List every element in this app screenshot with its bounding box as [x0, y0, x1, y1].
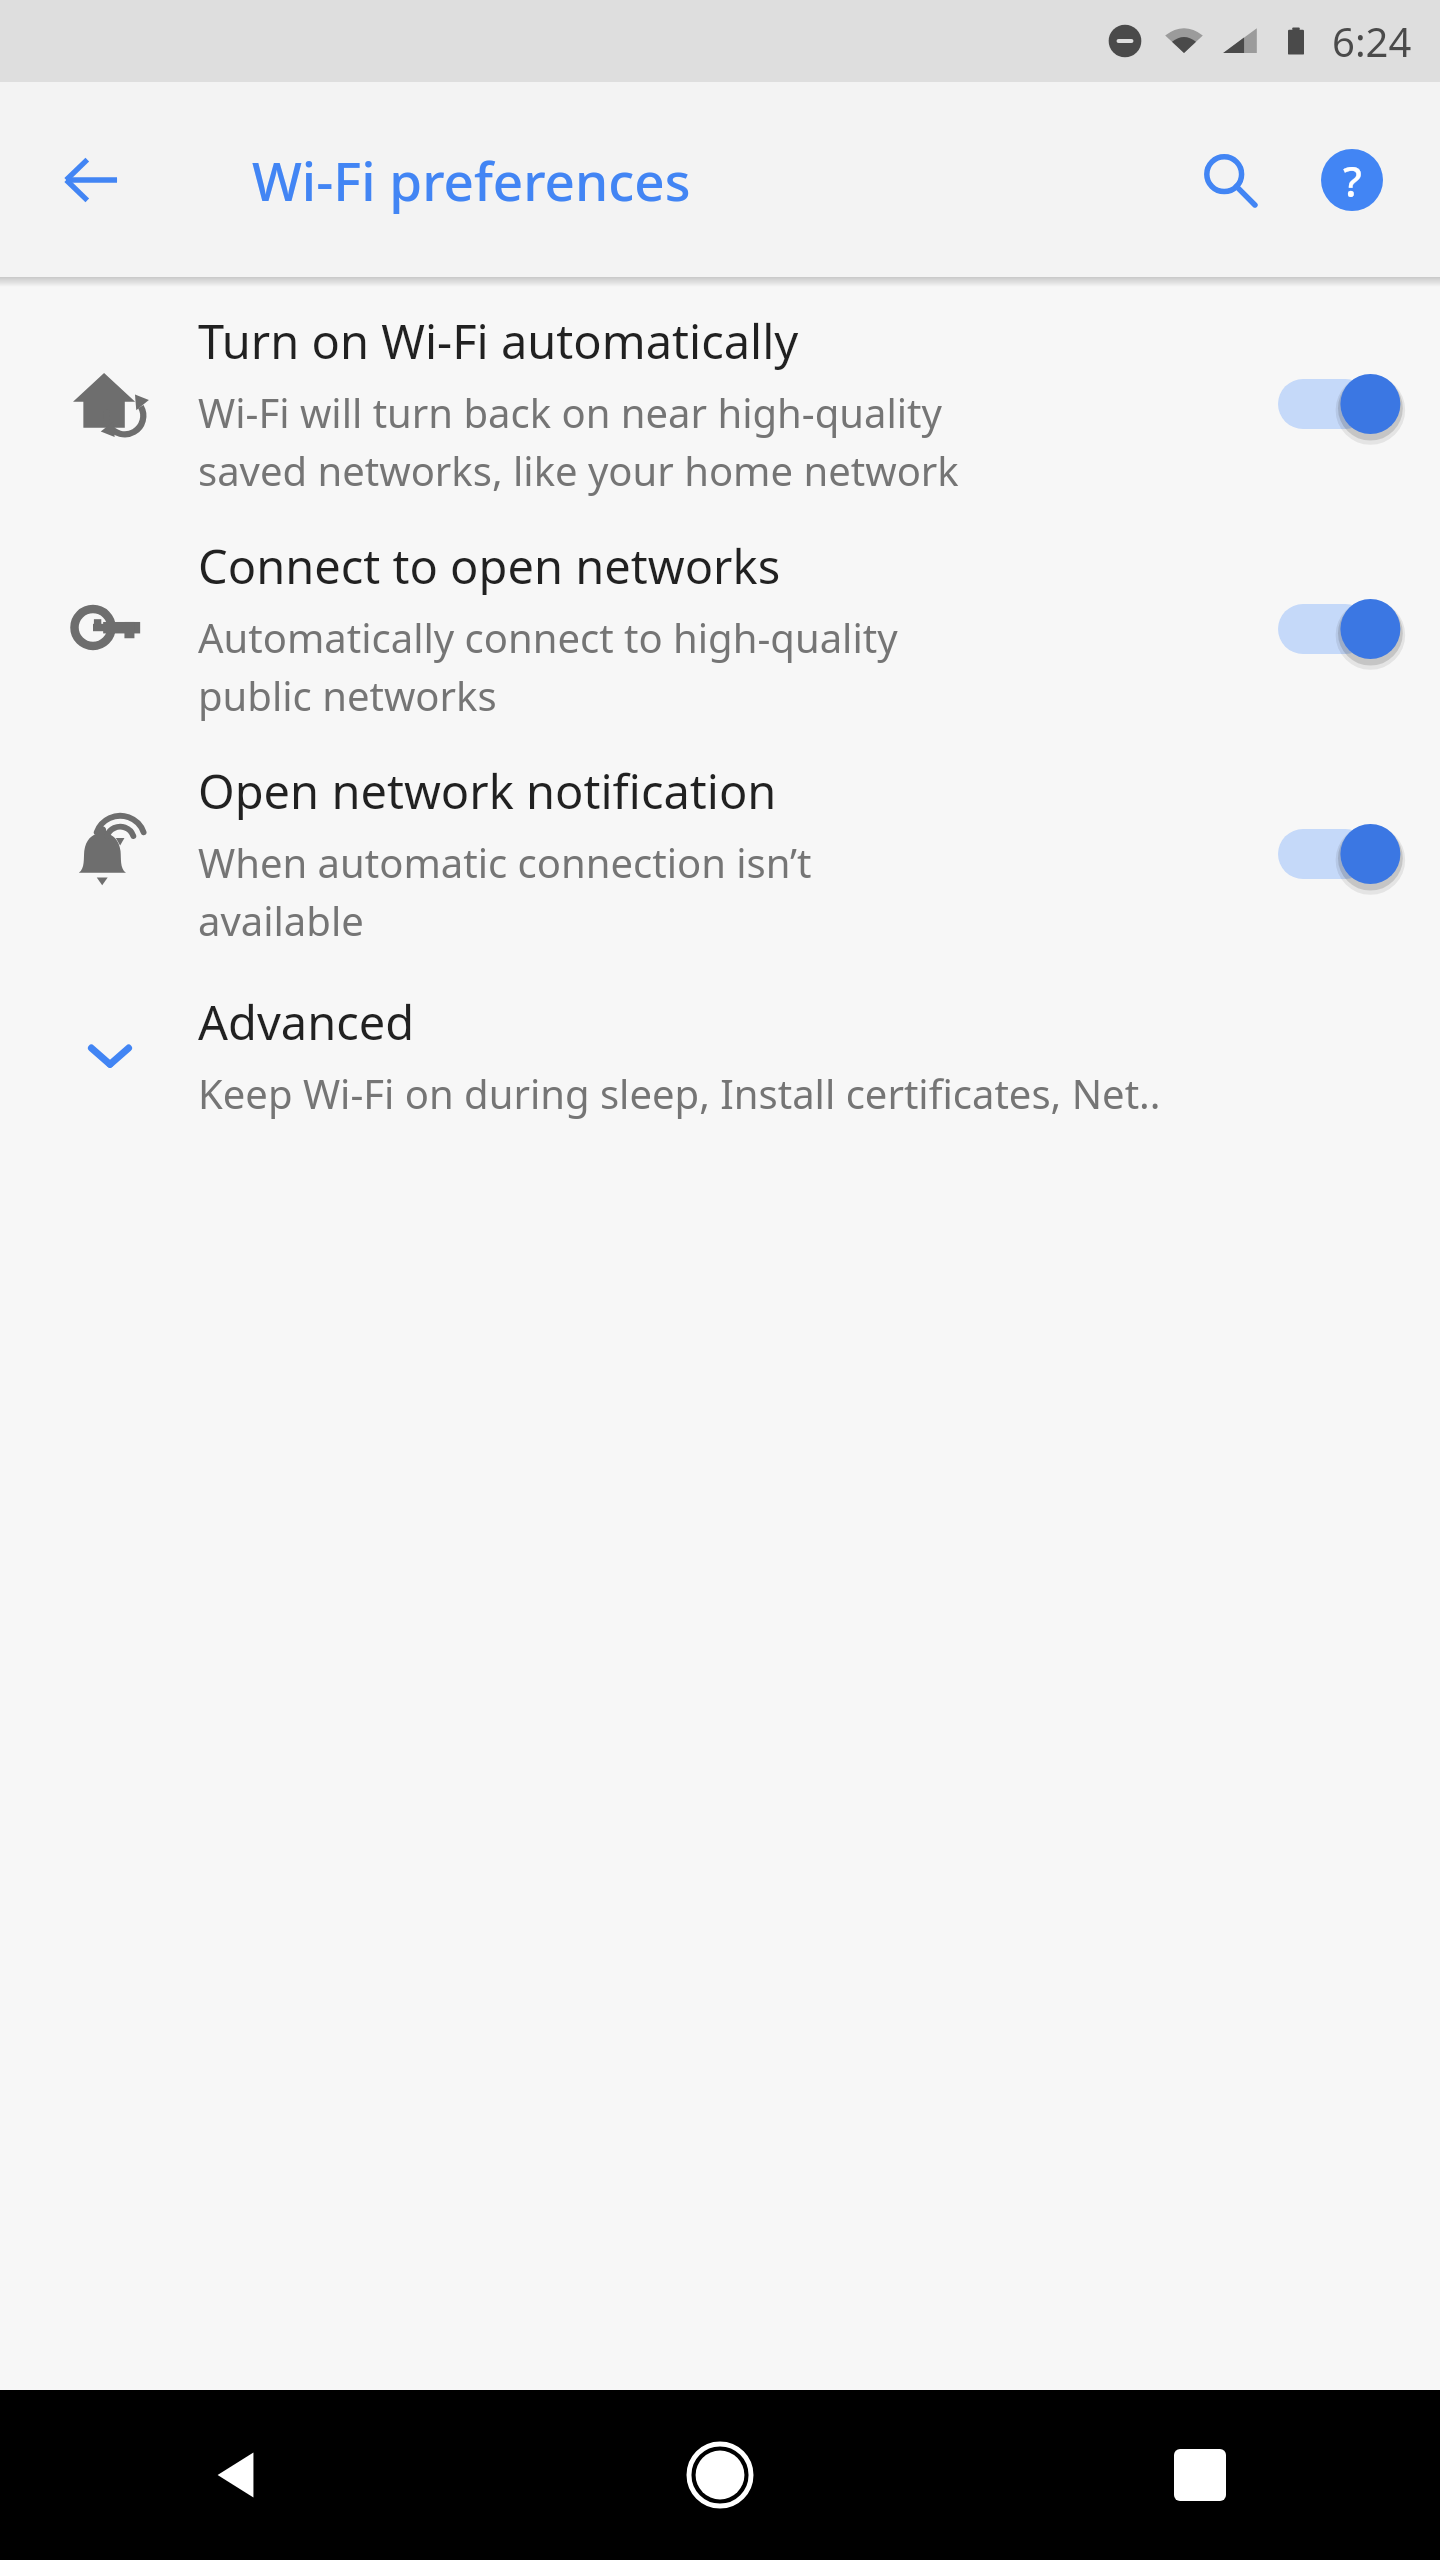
staticText: Wi-Fi preferences — [252, 144, 691, 216]
button[interactable]: Advanced — [0, 990, 1440, 1120]
button[interactable] — [1264, 804, 1404, 904]
button[interactable] — [1264, 579, 1404, 679]
staticText: Wi-Fi will turn back on near high-qualit… — [198, 385, 959, 498]
button[interactable]: Open network notification — [0, 759, 1440, 948]
staticText: Open network notification — [198, 759, 777, 823]
button[interactable] — [1264, 354, 1404, 454]
staticText: Automatically connect to high-quality pu… — [198, 610, 898, 723]
staticText: 6:24 — [1332, 14, 1412, 68]
button[interactable]: Home — [480, 2390, 960, 2560]
button[interactable]: Back — [0, 2390, 480, 2560]
staticText: Advanced — [198, 990, 415, 1054]
staticText: When automatic connection isn’t availabl… — [198, 835, 812, 948]
button[interactable]: Connect to open networks — [0, 534, 1440, 723]
staticText: Connect to open networks — [198, 534, 781, 598]
button[interactable]: Recent apps — [960, 2390, 1440, 2560]
button[interactable]: Back — [48, 137, 134, 223]
staticText: Turn on Wi-Fi automatically — [198, 309, 799, 373]
staticText: Keep Wi-Fi on during sleep, Install cert… — [198, 1066, 1161, 1120]
staticText: ? — [1343, 152, 1362, 209]
button[interactable]: Help — [1304, 132, 1400, 228]
button[interactable]: Search — [1182, 132, 1278, 228]
button[interactable]: Turn on Wi-Fi automatically — [0, 309, 1440, 498]
